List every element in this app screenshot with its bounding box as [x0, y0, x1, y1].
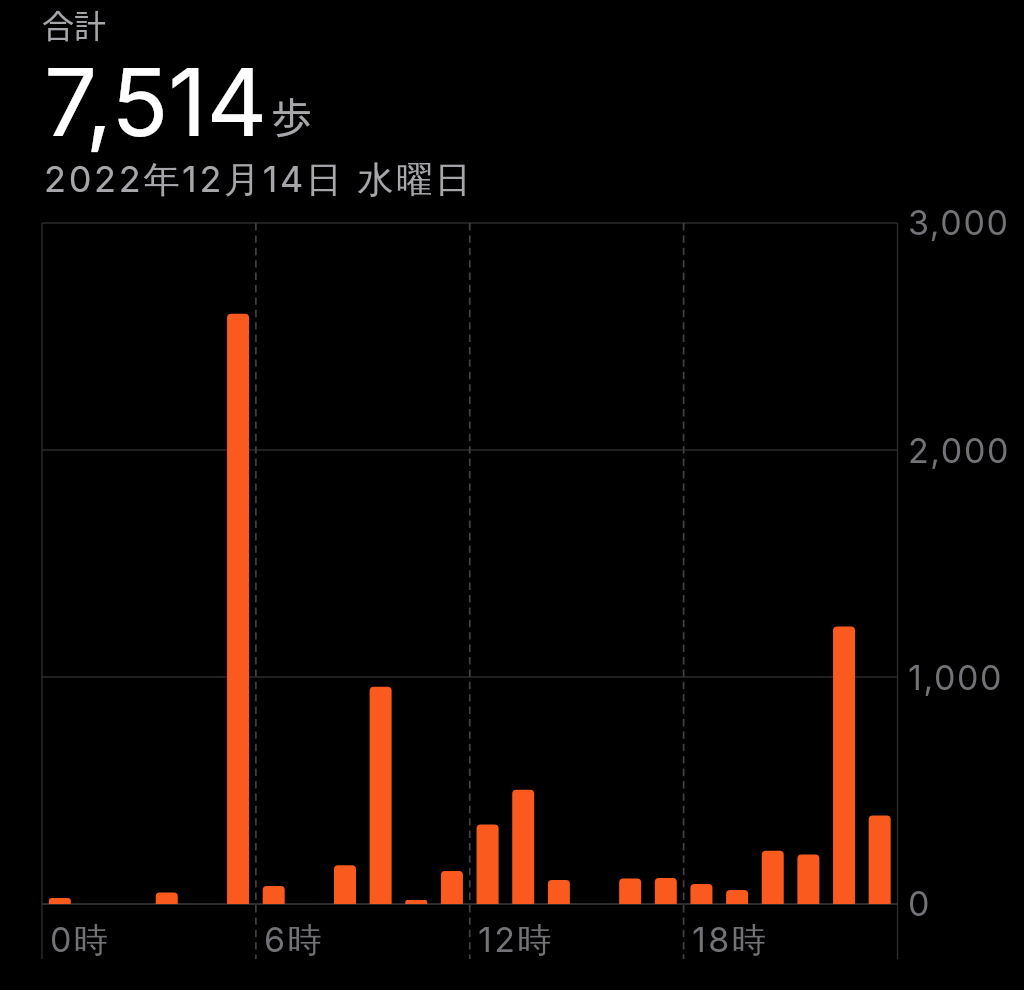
staticText: 0: [908, 883, 932, 924]
staticText: 6時: [264, 919, 324, 962]
staticText: 7,514: [44, 45, 268, 159]
button[interactable]: Hourly step count chart: [0, 0, 1024, 990]
staticText: 歩: [271, 85, 312, 144]
staticText: 3,000: [908, 202, 1010, 243]
staticText: 2022年12月14日 水曜日: [44, 157, 474, 203]
staticText: 18時: [692, 919, 769, 962]
staticText: 2,000: [908, 430, 1011, 471]
staticText: 1,000: [908, 657, 1004, 698]
staticText: 12時: [478, 919, 554, 962]
staticText: 0時: [50, 919, 111, 962]
staticText: 合計: [42, 1, 107, 47]
